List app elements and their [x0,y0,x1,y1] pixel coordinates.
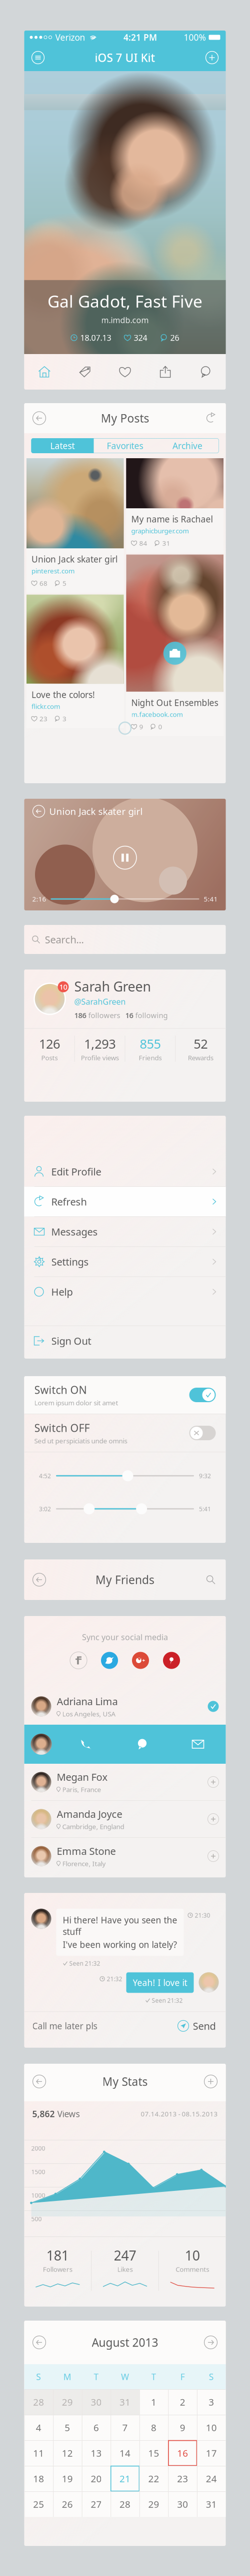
button[interactable]: 10 [197,2415,226,2440]
staticText: Verizon [55,32,85,43]
staticText: 29 [62,2396,73,2408]
button[interactable]: 29 [139,2491,168,2517]
staticText: T [151,2371,156,2382]
button[interactable]: 11 [24,2440,53,2466]
staticText: Followers [43,2265,72,2274]
staticText: August 2013 [92,2335,158,2350]
button[interactable]: 30 [82,2389,111,2415]
button[interactable]: Sign Out [24,1326,226,1356]
button[interactable]: 25 [24,2491,53,2517]
button[interactable]: Messages [24,1217,226,1246]
button[interactable]: Emma Stone [24,1838,226,1874]
button[interactable]: Favorites [94,438,156,453]
button[interactable]: 26 [53,2491,82,2517]
button[interactable]: Comments [185,354,226,390]
button[interactable]: 8 [139,2415,168,2440]
button[interactable]: Twitter [98,1649,120,1671]
button[interactable]: 1 [139,2389,168,2415]
button[interactable]: Share [145,354,185,390]
button[interactable]: 3 [197,2389,226,2415]
button[interactable]: 19 [53,2466,82,2491]
button[interactable]: 20 [82,2466,111,2491]
button[interactable]: 31 [197,2491,226,2517]
button[interactable]: Menu [28,48,48,67]
button[interactable]: 24 [197,2466,226,2491]
button[interactable]: Switch ON [24,1376,226,1414]
button[interactable]: 13 [82,2440,111,2466]
button[interactable]: Google Plus [129,1649,151,1671]
button[interactable]: Back [29,1570,49,1590]
button[interactable]: Contact avatar [24,1725,58,1764]
button[interactable]: 16 [168,2440,197,2466]
button[interactable]: 9 [168,2415,197,2440]
staticText: 18.07.13 [80,332,111,343]
staticText: S [36,2371,41,2382]
button[interactable]: 17 [197,2440,226,2466]
staticText: 68 [39,579,47,588]
button[interactable]: 15 [139,2440,168,2466]
button[interactable]: Refresh [201,408,221,428]
staticText: 10 [185,2246,200,2264]
button[interactable]: Send [176,2014,218,2037]
button[interactable]: Previous month [29,2332,49,2352]
staticText: Amanda Joyce [57,1807,122,1821]
button[interactable]: 23 [168,2466,197,2491]
button[interactable]: 7 [111,2415,139,2440]
button[interactable]: Adriana Lima [24,1688,226,1725]
button[interactable]: Email [170,1725,226,1764]
staticText: Lorem ipsum dolor sit amet [34,1398,118,1407]
button[interactable]: 4 [24,2415,53,2440]
button[interactable]: Call [58,1725,114,1764]
button[interactable]: 14 [111,2440,139,2466]
button[interactable]: Next month [201,2332,221,2352]
staticText: 1 [151,2396,157,2408]
staticText: Los Angeles, USA [62,1709,116,1718]
button[interactable]: 18 [24,2466,53,2491]
button[interactable]: 27 [82,2491,111,2517]
button[interactable]: 2 [168,2389,197,2415]
button[interactable]: 29 [53,2389,82,2415]
button[interactable]: Search... [24,925,226,954]
staticText: m.facebook.com [131,710,183,719]
button[interactable]: Back [29,802,48,821]
staticText: followers [88,1010,120,1020]
staticText: 23 [177,2472,188,2485]
staticText: 4:21 PM [123,32,157,43]
button[interactable]: Megan Fox [24,1764,226,1800]
button[interactable]: 28 [24,2389,53,2415]
button[interactable]: Refresh [24,1187,226,1216]
button[interactable]: 21 [111,2466,139,2491]
button[interactable]: Pinterest [160,1649,182,1671]
button[interactable]: Amanda Joyce [24,1801,226,1837]
staticText: S [209,2371,214,2382]
button[interactable]: Add [202,48,222,67]
staticText: 16 [177,2447,188,2459]
button[interactable]: Switch OFF [24,1414,226,1452]
button[interactable]: Tags [65,354,105,390]
button[interactable]: Add [201,2071,221,2091]
button[interactable]: Favourites [105,354,145,390]
staticText: 9:32 [199,1472,211,1480]
button[interactable]: Edit Profile [24,1157,226,1186]
button[interactable]: Latest [31,438,94,453]
button[interactable]: 22 [139,2466,168,2491]
staticText: 3 [209,2396,214,2408]
button[interactable]: Settings [24,1247,226,1276]
button[interactable]: 5 [53,2415,82,2440]
button[interactable]: Back [29,408,49,428]
button[interactable]: 12 [53,2440,82,2466]
button[interactable]: Help [24,1277,226,1307]
button[interactable]: Archive [156,438,219,453]
staticText: 4 [36,2421,41,2434]
button[interactable]: Back [29,2071,49,2091]
button[interactable]: Search [201,1570,221,1590]
button[interactable]: 6 [82,2415,111,2440]
button[interactable]: Facebook [67,1649,89,1671]
button[interactable]: 28 [111,2491,139,2517]
button[interactable]: Home [24,354,65,390]
button[interactable]: Message [114,1725,170,1764]
button[interactable]: 31 [111,2389,139,2415]
staticText: @SarahGreen [74,996,126,1007]
staticText: Cambridge, England [62,1822,124,1831]
button[interactable]: 30 [168,2491,197,2517]
